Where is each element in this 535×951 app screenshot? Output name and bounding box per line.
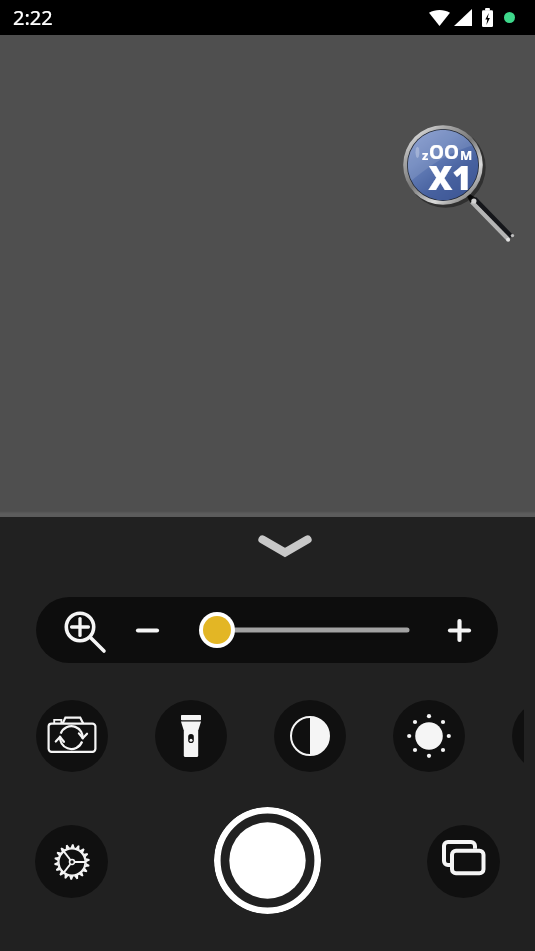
button[interactable]: More tools <box>512 700 524 772</box>
button[interactable]: Zoom out <box>125 608 169 652</box>
staticText: 2:22 <box>13 4 53 31</box>
button[interactable]: Gallery <box>427 825 500 898</box>
button[interactable]: Settings <box>35 825 108 898</box>
button[interactable]: Collapse controls <box>247 524 323 568</box>
button[interactable]: Contrast <box>274 700 346 772</box>
button[interactable]: Zoom in <box>437 608 481 652</box>
staticText: z <box>422 146 429 164</box>
button[interactable]: Flashlight <box>155 700 227 772</box>
button[interactable]: Capture <box>214 807 321 914</box>
staticText: OO <box>429 139 460 165</box>
staticText: M <box>460 146 473 164</box>
button[interactable]: Zoom level <box>36 597 498 663</box>
button[interactable]: Switch camera <box>36 700 108 772</box>
button[interactable]: Brightness <box>393 700 465 772</box>
button[interactable]: Zoom level <box>62 609 110 657</box>
staticText: X1 <box>428 155 472 200</box>
